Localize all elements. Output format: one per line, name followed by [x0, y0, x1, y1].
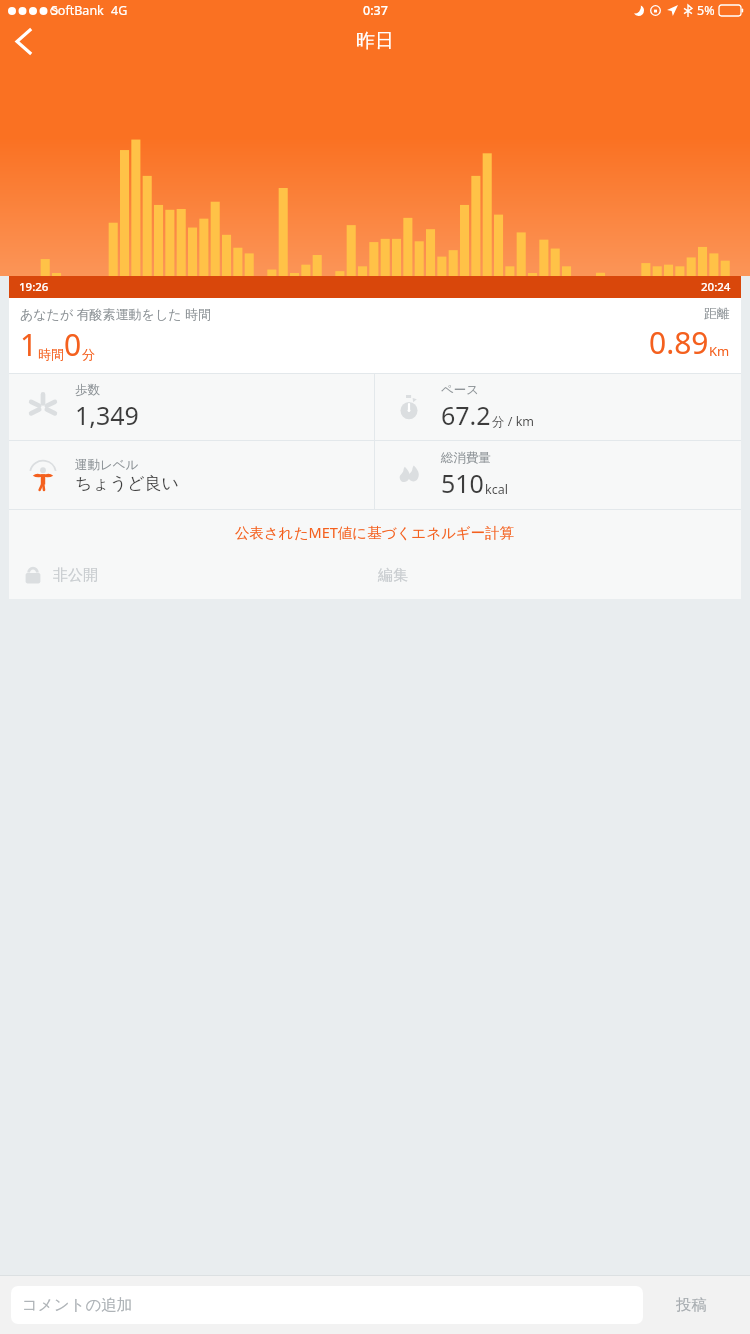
staticText: ペース	[441, 382, 480, 398]
staticText: 0:37	[363, 2, 388, 19]
staticText: 1,349	[75, 398, 139, 432]
button[interactable]: 編集	[360, 553, 741, 597]
staticText: 510	[441, 466, 484, 500]
staticText: 運動レベル	[75, 457, 139, 473]
staticText: あなたが 有酸素運動をした 時間	[20, 305, 211, 323]
staticText: 投稿	[676, 1295, 707, 1315]
staticText: 距離	[704, 305, 730, 321]
staticText: kcal	[485, 481, 508, 498]
staticText: 時間	[38, 346, 64, 362]
button[interactable]: 公表されたMET値に基づくエネルギー計算	[9, 510, 741, 553]
staticText: 5%	[697, 2, 715, 19]
staticText: コメントの追加	[22, 1295, 133, 1315]
staticText: 19:26	[19, 279, 49, 295]
staticText: 公表されたMET値に基づくエネルギー計算	[235, 522, 515, 542]
staticText: SoftBank	[51, 2, 104, 19]
button[interactable]: 投稿	[643, 1276, 739, 1334]
staticText: 4G	[111, 2, 128, 19]
staticText: 20:24	[701, 279, 731, 295]
button[interactable]: ペース	[375, 374, 741, 440]
button[interactable]: 総消費量	[375, 441, 741, 509]
button[interactable]: 歩数	[9, 374, 374, 440]
staticText: 分 / km	[492, 413, 535, 430]
staticText: 67.2	[441, 398, 491, 432]
button[interactable]: コメントの追加	[11, 1286, 643, 1324]
staticText: 総消費量	[441, 450, 491, 466]
staticText: 分	[82, 346, 95, 362]
staticText: 非公開	[53, 566, 98, 585]
button[interactable]: 運動レベル	[9, 441, 374, 509]
staticText: 昨日	[356, 29, 394, 53]
staticText: 1	[20, 324, 38, 365]
staticText: ちょうど良い	[75, 473, 179, 494]
staticText: 編集	[378, 566, 408, 585]
staticText: 歩数	[75, 382, 100, 398]
button[interactable]: Back	[0, 20, 46, 62]
staticText: 0.89	[649, 322, 709, 363]
staticText: 0	[64, 324, 82, 365]
staticText: Km	[709, 342, 730, 360]
button[interactable]: 非公開	[9, 553, 360, 597]
